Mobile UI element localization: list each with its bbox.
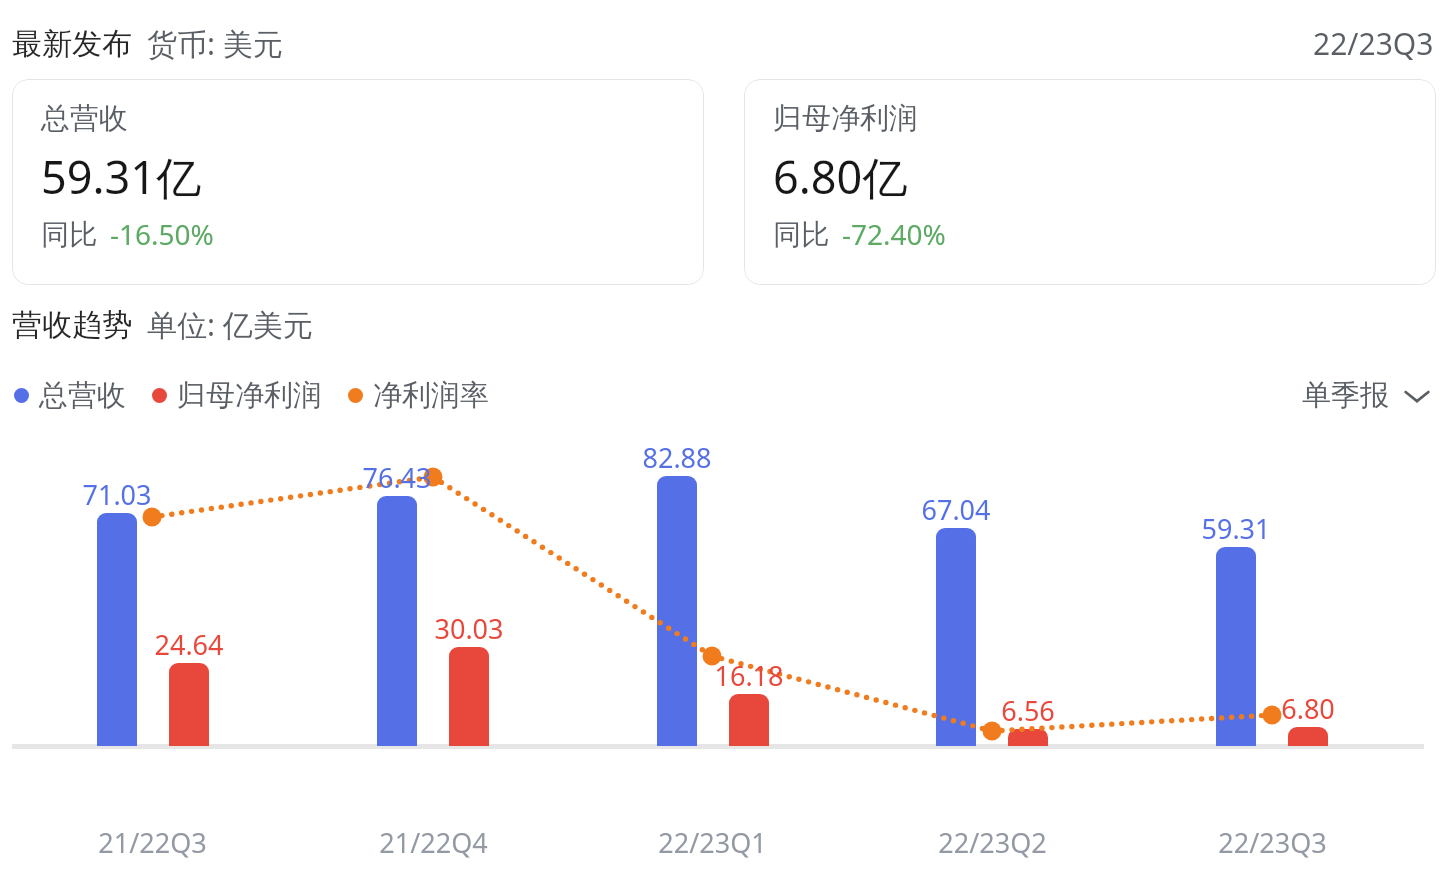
staticText: -72.40% bbox=[842, 215, 946, 253]
staticText: 59.31 bbox=[1201, 510, 1271, 547]
staticText: 净利润率 bbox=[373, 377, 489, 414]
staticText: 24.64 bbox=[154, 626, 224, 663]
staticText: 6.80 bbox=[1281, 690, 1335, 727]
button[interactable]: 单季报 bbox=[1298, 372, 1434, 419]
staticText: 21/22Q3 bbox=[98, 824, 207, 861]
staticText: 总营收 bbox=[41, 100, 128, 137]
button[interactable]: 净利润率 bbox=[345, 372, 492, 419]
staticText: 22/23Q2 bbox=[938, 824, 1047, 861]
staticText: 67.04 bbox=[921, 491, 991, 528]
staticText: 30.03 bbox=[434, 610, 504, 647]
button[interactable]: 总营收 bbox=[11, 372, 129, 419]
staticText: 76.43 bbox=[362, 459, 432, 496]
button[interactable]: 归母净利润 bbox=[149, 372, 325, 419]
staticText: 归母净利润 bbox=[177, 377, 322, 414]
staticText: 营收趋势 bbox=[12, 306, 132, 344]
staticText: 总营收 bbox=[39, 377, 126, 414]
staticText: 59.31亿 bbox=[41, 146, 202, 207]
staticText: 21/22Q4 bbox=[379, 824, 488, 861]
staticText: 22/23Q3 bbox=[1218, 824, 1327, 861]
staticText: 16.18 bbox=[714, 657, 784, 694]
staticText: 单季报 bbox=[1302, 377, 1389, 414]
button[interactable]: 归母净利润 bbox=[744, 79, 1436, 285]
staticText: 归母净利润 bbox=[773, 100, 918, 137]
staticText: 同比 bbox=[773, 217, 829, 252]
button[interactable]: 总营收 bbox=[12, 79, 704, 285]
staticText: 6.80亿 bbox=[773, 146, 908, 207]
staticText: 22/23Q3 bbox=[1313, 23, 1434, 64]
staticText: 71.03 bbox=[82, 476, 152, 513]
staticText: 同比 bbox=[41, 217, 97, 252]
staticText: 单位: 亿美元 bbox=[147, 304, 313, 345]
staticText: 82.88 bbox=[642, 439, 712, 476]
staticText: 6.56 bbox=[1001, 692, 1055, 729]
other: 切换报告周期 bbox=[1404, 388, 1430, 404]
staticText: 货币: 美元 bbox=[147, 23, 283, 64]
staticText: 22/23Q1 bbox=[658, 824, 767, 861]
staticText: -16.50% bbox=[110, 215, 214, 253]
staticText: 最新发布 bbox=[12, 25, 132, 63]
